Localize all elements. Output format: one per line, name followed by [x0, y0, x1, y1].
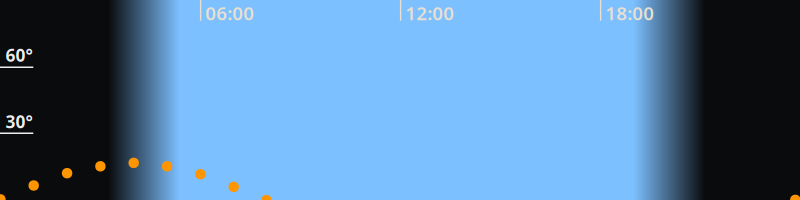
staticText: 60° — [5, 43, 32, 66]
staticText: 06:00 — [205, 1, 254, 25]
staticText: 18:00 — [605, 1, 654, 25]
staticText: 12:00 — [405, 1, 454, 25]
staticText: 30° — [5, 110, 32, 133]
